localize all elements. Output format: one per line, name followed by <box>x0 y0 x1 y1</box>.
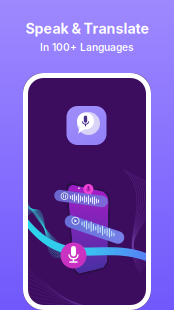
staticText: Speak & Translate <box>25 20 148 37</box>
staticText: In 100+ Languages <box>40 41 134 53</box>
